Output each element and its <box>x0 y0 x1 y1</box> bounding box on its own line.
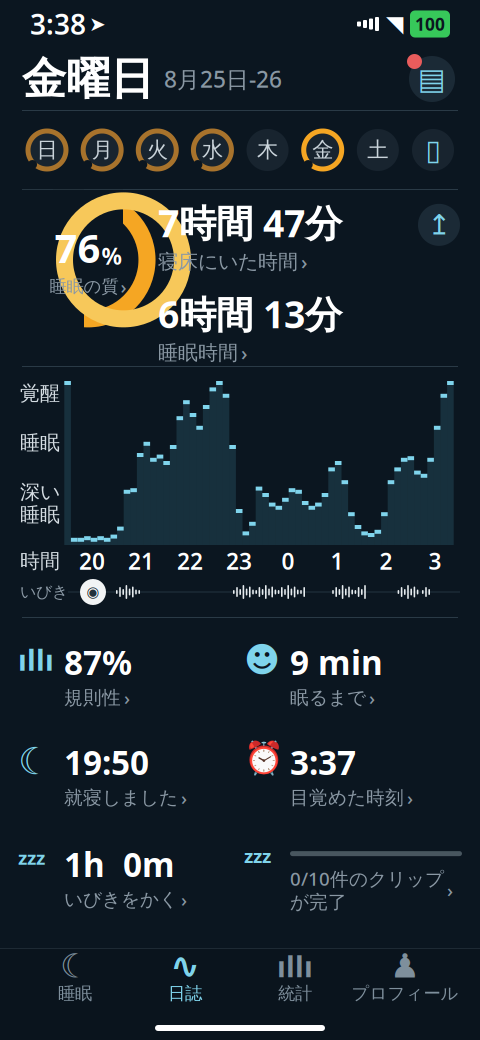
staticText: 日 <box>36 137 57 163</box>
staticText: › <box>407 785 413 810</box>
staticText: 6時間 13分 <box>158 289 342 339</box>
button[interactable]: 6時間 13分 <box>158 289 378 366</box>
button[interactable]: 月 <box>79 127 125 173</box>
staticText: 23 <box>226 546 252 576</box>
staticText: 睡眠 <box>58 983 92 1004</box>
staticText: ᶻᶻᶻ <box>244 840 271 879</box>
staticText: 睡眠 <box>20 430 60 455</box>
staticText: › <box>369 685 375 710</box>
button[interactable]: 7時間 47分 <box>158 198 378 275</box>
button[interactable]: 日 <box>24 127 70 173</box>
button[interactable]: Notes <box>410 127 456 173</box>
staticText: › <box>241 340 248 366</box>
staticText: 0/10件のクリップが完了 <box>290 866 444 914</box>
staticText: ıllı <box>18 640 54 679</box>
staticText: 20 <box>79 546 105 576</box>
staticText: 就寝しました <box>64 786 178 809</box>
button[interactable]: Share <box>416 202 462 248</box>
staticText: 100 <box>415 12 445 35</box>
staticText: ıllı <box>277 946 313 985</box>
staticText: 寝床にいた時間 <box>158 249 298 274</box>
button[interactable]: ᶻᶻᶻ <box>244 836 462 918</box>
staticText: 21 <box>128 546 154 576</box>
staticText: 7時間 47分 <box>158 198 342 247</box>
button[interactable]: ☾ <box>20 950 130 1006</box>
staticText: 3:37 <box>290 740 356 784</box>
staticText: 規則性 <box>64 686 121 709</box>
button[interactable]: ⏰ <box>244 736 462 814</box>
staticText: ⏰ <box>244 740 284 777</box>
staticText: % <box>101 241 121 271</box>
staticText: ᶻᶻᶻ <box>18 842 45 881</box>
staticText: › <box>447 878 453 902</box>
staticText: 時間 <box>20 549 60 573</box>
staticText: 87% <box>64 640 132 684</box>
staticText: › <box>181 785 187 810</box>
staticText: 金 <box>312 137 333 163</box>
staticText: 睡眠時間 <box>158 341 238 365</box>
staticText: 深い <box>20 480 60 504</box>
button[interactable]: 水 <box>189 127 235 173</box>
staticText: いびき <box>20 582 68 602</box>
staticText: ▯ <box>425 134 440 166</box>
staticText: 土 <box>367 137 388 163</box>
staticText: ☾ <box>18 740 51 782</box>
staticText: 月 <box>92 137 113 163</box>
staticText: 水 <box>202 137 223 163</box>
staticText: › <box>301 248 308 275</box>
staticText: ◉ <box>86 584 99 600</box>
button[interactable]: 木 <box>245 127 291 173</box>
staticText: いびきをかく <box>64 888 178 911</box>
staticText: 統計 <box>278 983 312 1004</box>
staticText: 金曜日 <box>22 52 154 106</box>
staticText: 76 <box>54 221 100 274</box>
staticText: ☾ <box>60 947 90 985</box>
button[interactable]: ☾ <box>18 736 236 814</box>
staticText: 0 <box>281 546 294 576</box>
staticText: 3:38 <box>30 5 86 43</box>
button[interactable]: ♟ <box>350 950 460 1006</box>
staticText: ◥ <box>386 11 403 37</box>
staticText: 日誌 <box>168 983 202 1004</box>
staticText: ➤ <box>89 13 106 35</box>
button[interactable]: ∿ <box>130 950 240 1006</box>
staticText: 眠るまで <box>290 686 366 709</box>
staticText: 覚醒 <box>20 381 60 406</box>
staticText: › <box>120 274 126 299</box>
staticText: 1 <box>330 546 343 576</box>
staticText: 19:50 <box>64 740 149 784</box>
staticText: 木 <box>257 137 278 163</box>
staticText: 2 <box>379 546 392 576</box>
button[interactable]: ıllı <box>18 636 236 714</box>
staticText: ▤ <box>418 62 446 96</box>
staticText: ♟ <box>390 947 420 985</box>
staticText: 3 <box>428 546 441 576</box>
button[interactable]: ☻ <box>244 636 462 714</box>
button[interactable]: ᶻᶻᶻ <box>18 838 236 916</box>
staticText: 8月25日-26 <box>164 64 282 94</box>
staticText: ☻ <box>244 640 280 679</box>
staticText: ∿ <box>170 945 200 986</box>
staticText: 火 <box>147 137 168 163</box>
staticText: 22 <box>177 546 203 576</box>
staticText: プロフィール <box>351 983 458 1004</box>
button[interactable]: 土 <box>355 127 401 173</box>
staticText: ↥ <box>427 209 450 241</box>
staticText: › <box>181 887 187 912</box>
button[interactable]: Calendar <box>406 53 458 105</box>
button[interactable]: 金 <box>300 127 346 173</box>
button[interactable]: ıllı <box>240 950 350 1006</box>
staticText: 睡眠の質 <box>49 276 118 297</box>
staticText: 目覚めた時刻 <box>290 786 404 809</box>
staticText: 9 min <box>290 640 383 684</box>
staticText: 睡眠 <box>20 502 60 527</box>
staticText: 1h 0m <box>64 842 175 886</box>
staticText: › <box>124 685 130 710</box>
button[interactable]: 火 <box>134 127 180 173</box>
